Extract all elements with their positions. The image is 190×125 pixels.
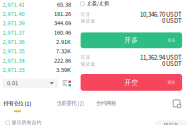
button[interactable]: Order book display mode — [62, 80, 71, 87]
staticText: 保证金 — [81, 61, 96, 67]
staticText: 可开 — [81, 55, 91, 61]
staticText: 2,971.34 — [2, 56, 24, 65]
staticText: 看跌 — [167, 80, 175, 85]
button[interactable]: 2,971.40 — [2, 9, 71, 19]
staticText: 开空 — [124, 78, 138, 87]
staticText: 0 USDT — [162, 16, 182, 26]
staticText: 2,971.39 — [2, 19, 24, 28]
staticText: 11,362.94 USDT — [140, 53, 182, 63]
button[interactable]: 2,971.34 — [2, 56, 71, 65]
staticText: 可开 — [81, 12, 91, 18]
button[interactable]: 2,971.36 — [2, 37, 71, 47]
button[interactable]: Position display settings — [173, 100, 181, 108]
button[interactable]: 当前委托 (2) — [32, 100, 85, 108]
staticText: 2.91K — [56, 37, 71, 46]
staticText: 开多 — [124, 36, 138, 45]
button[interactable]: 显示所有合约 — [0, 120, 41, 125]
staticText: 2,971.36 — [2, 37, 24, 46]
staticText: 160.46 — [54, 28, 71, 37]
button[interactable]: 2,971.41 — [2, 0, 71, 9]
staticText: 222.86 — [54, 56, 71, 65]
staticText: 0 USDT — [162, 59, 182, 69]
button[interactable]: 2,971.39 — [2, 19, 71, 28]
staticText: 显示所有合约 — [11, 120, 41, 125]
staticText: 保证金 — [81, 18, 96, 24]
staticText: 持有仓位 (1) — [3, 100, 31, 108]
button[interactable]: 2,971.35 — [2, 47, 71, 56]
staticText: 10,346.70 USDT — [140, 10, 182, 20]
staticText: 2,971.35 — [2, 47, 24, 56]
staticText: 0.01 — [7, 79, 18, 88]
button[interactable]: 2,971.33 — [2, 65, 71, 75]
button[interactable]: 0.01 — [3, 78, 58, 88]
staticText: 3.59K — [56, 65, 71, 74]
button[interactable]: 合约网格 — [85, 100, 116, 107]
button[interactable]: 开空 — [81, 74, 182, 91]
button[interactable]: 持有仓位 (1) — [3, 100, 32, 112]
button[interactable]: 开多 — [81, 32, 182, 48]
staticText: 看涨 — [167, 38, 175, 43]
staticText: 65.38 — [57, 0, 71, 9]
staticText: 7.32K — [56, 47, 71, 56]
staticText: 344.69 — [54, 19, 71, 28]
staticText: 2,971.40 — [2, 9, 24, 18]
staticText: 止盈/止损 — [87, 0, 109, 7]
staticText: 当前委托 (2) — [56, 100, 84, 108]
button[interactable]: 2,971.37 — [2, 28, 71, 37]
staticText: 181.26 — [54, 9, 71, 18]
staticText: 合约网格 — [96, 100, 116, 107]
button[interactable]: 止盈/止损 — [81, 0, 182, 6]
button[interactable]: 模拟盘 — [154, 120, 188, 125]
staticText: 2,971.37 — [2, 28, 24, 37]
staticText: 2,971.41 — [2, 0, 24, 9]
staticText: 2,971.33 — [2, 65, 24, 74]
staticText: 模拟盘 — [164, 122, 179, 125]
